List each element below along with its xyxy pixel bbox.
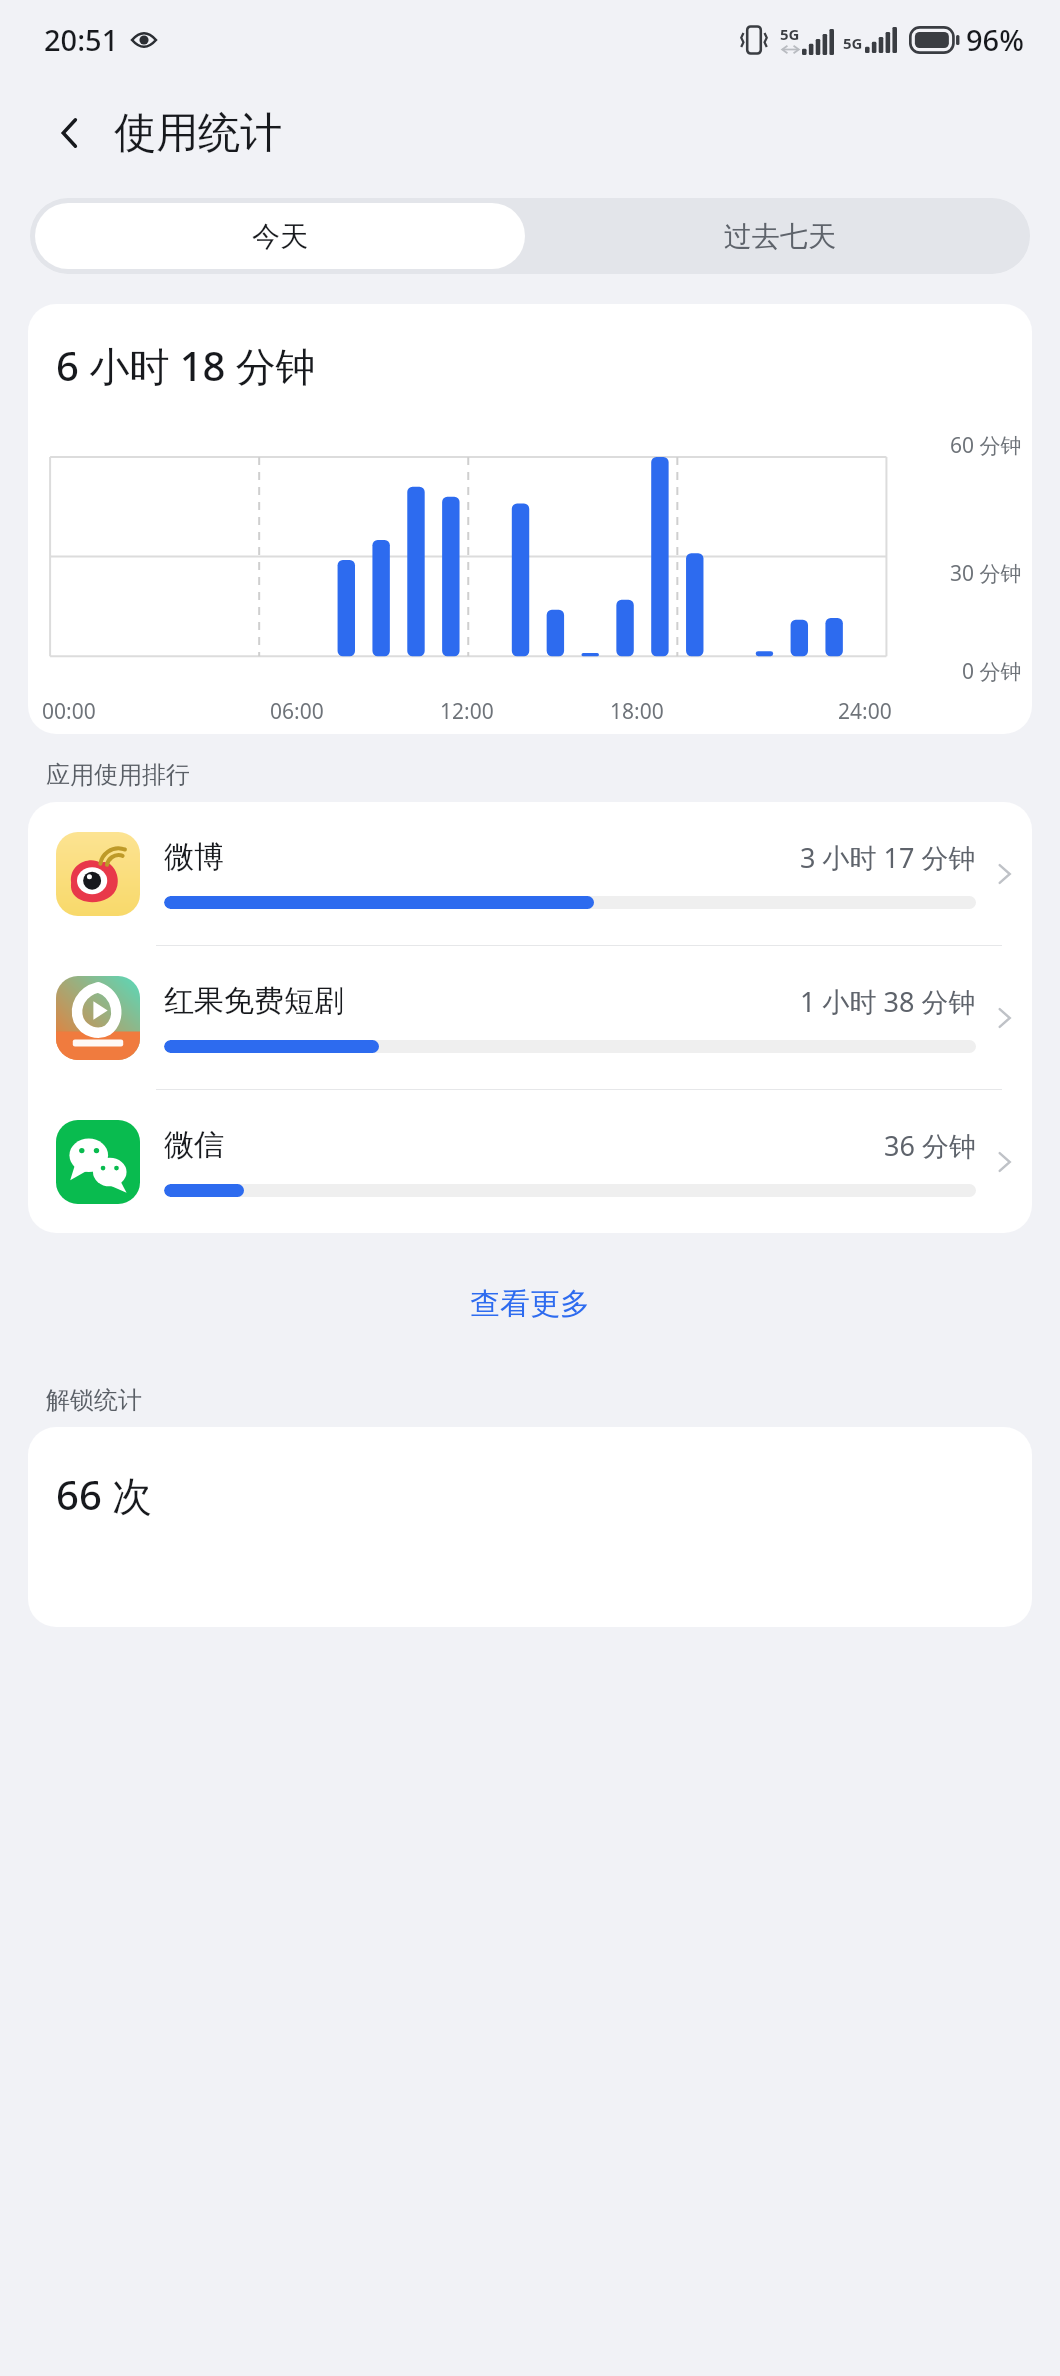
staticText: 解锁统计	[46, 1385, 142, 1415]
staticText: 00:00	[42, 697, 96, 726]
button[interactable]: 查看更多	[0, 1249, 1060, 1359]
staticText: 红果免费短剧	[164, 982, 344, 1020]
button[interactable]: 过去七天	[530, 198, 1030, 274]
staticText: 96%	[966, 20, 1024, 59]
staticText: 查看更多	[470, 1285, 590, 1323]
staticText: 微信	[164, 1126, 224, 1164]
staticText: 3 小时 17 分钟	[800, 839, 976, 876]
staticText: 0 分钟	[962, 657, 1022, 686]
staticText: 使用统计	[114, 107, 282, 160]
staticText: 1 小时 38 分钟	[800, 983, 976, 1020]
staticText: 今天	[252, 219, 308, 254]
button[interactable]: 今天	[35, 203, 525, 269]
staticText: 12:00	[440, 697, 494, 726]
staticText: 30 分钟	[950, 559, 1022, 588]
button[interactable]: 返回	[40, 103, 100, 163]
staticText: 60 分钟	[950, 431, 1022, 460]
staticText: 20:51	[44, 20, 119, 59]
staticText: 18:00	[610, 697, 664, 726]
button[interactable]: 微信	[28, 1090, 1032, 1233]
staticText: 24:00	[838, 697, 892, 726]
staticText: 6 小时 18 分钟	[56, 338, 316, 393]
staticText: 06:00	[270, 697, 324, 726]
staticText: 微博	[164, 838, 224, 876]
button[interactable]: 微博	[28, 802, 1032, 945]
staticText: 5G	[843, 33, 863, 53]
staticText: 5G	[780, 24, 800, 44]
staticText: 66 次	[56, 1467, 153, 1522]
staticText: 应用使用排行	[46, 760, 190, 790]
staticText: 36 分钟	[884, 1127, 976, 1164]
button[interactable]: 红果免费短剧	[28, 946, 1032, 1089]
staticText: 过去七天	[724, 219, 836, 254]
